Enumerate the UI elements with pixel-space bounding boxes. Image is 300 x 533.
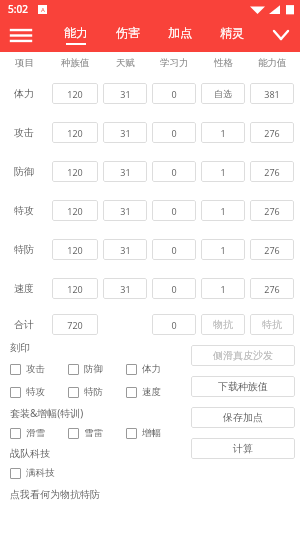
staticText: 攻击: [26, 363, 45, 375]
button[interactable]: 加点: [164, 23, 196, 47]
staticText: 720: [67, 319, 83, 331]
staticText: 特抗: [262, 318, 282, 331]
staticText: 战队科技: [10, 447, 50, 460]
staticText: 31: [120, 127, 131, 139]
staticText: 120: [67, 205, 83, 217]
staticText: 120: [67, 244, 83, 256]
staticText: 计算: [233, 442, 253, 455]
staticText: 天赋: [116, 57, 135, 69]
button[interactable]: 1: [201, 161, 245, 182]
button[interactable]: 0: [152, 83, 196, 104]
button[interactable]: 1: [201, 239, 245, 260]
button[interactable]: 特防: [68, 386, 126, 398]
button[interactable]: 自选: [201, 83, 245, 104]
staticText: 体力: [142, 363, 161, 375]
staticText: 加点: [168, 25, 192, 40]
button[interactable]: 物抗: [201, 314, 245, 335]
staticText: 速度: [14, 282, 34, 295]
button[interactable]: 0: [152, 200, 196, 221]
staticText: 项目: [15, 57, 34, 69]
button[interactable]: 能力: [60, 23, 92, 47]
staticText: 5:02: [8, 2, 28, 16]
staticText: 120: [67, 283, 83, 295]
staticText: 0: [171, 88, 177, 100]
staticText: 精灵: [220, 25, 244, 40]
button[interactable]: 276: [250, 161, 294, 182]
button[interactable]: 31: [103, 239, 147, 260]
button[interactable]: 720: [52, 314, 98, 335]
staticText: 合计: [14, 318, 34, 331]
staticText: 31: [120, 205, 131, 217]
button[interactable]: 0: [152, 161, 196, 182]
button[interactable]: 1: [201, 278, 245, 299]
staticText: 276: [264, 205, 280, 217]
staticText: 特攻: [26, 386, 45, 398]
staticText: 下载种族值: [218, 380, 268, 393]
button[interactable]: 0: [152, 314, 196, 335]
button[interactable]: 120: [52, 200, 98, 221]
button[interactable]: 侧滑真皮沙发: [191, 345, 295, 366]
button[interactable]: 计算: [191, 438, 295, 459]
button[interactable]: 31: [103, 122, 147, 143]
staticText: 31: [120, 283, 131, 295]
staticText: 种族值: [61, 57, 90, 69]
button[interactable]: 满科技: [10, 467, 80, 479]
button[interactable]: 0: [152, 278, 196, 299]
staticText: 0: [171, 166, 177, 178]
staticText: 0: [171, 283, 177, 295]
staticText: 120: [67, 88, 83, 100]
staticText: 0: [171, 244, 177, 256]
button[interactable]: 0: [152, 239, 196, 260]
button[interactable]: 31: [103, 278, 147, 299]
button[interactable]: 120: [52, 161, 98, 182]
button[interactable]: 120: [52, 83, 98, 104]
button[interactable]: 1: [201, 200, 245, 221]
button[interactable]: 0: [152, 122, 196, 143]
staticText: 381: [264, 88, 280, 100]
button[interactable]: 点我看何为物抗特防: [10, 488, 100, 501]
staticText: 276: [264, 127, 280, 139]
staticText: 特攻: [14, 204, 34, 217]
staticText: 1: [220, 283, 226, 295]
staticText: 120: [67, 166, 83, 178]
staticText: 特防: [84, 386, 103, 398]
button[interactable]: 120: [52, 122, 98, 143]
staticText: 性格: [214, 57, 233, 69]
button[interactable]: 滑雪: [10, 427, 68, 439]
staticText: 120: [67, 127, 83, 139]
button[interactable]: 31: [103, 161, 147, 182]
button[interactable]: 伤害: [112, 23, 144, 47]
button[interactable]: 雪雷: [68, 427, 126, 439]
staticText: 伤害: [116, 25, 140, 40]
button[interactable]: 31: [103, 83, 147, 104]
button[interactable]: 276: [250, 122, 294, 143]
button[interactable]: 速度: [126, 386, 184, 398]
button[interactable]: 276: [250, 200, 294, 221]
staticText: 31: [120, 88, 131, 100]
staticText: 特防: [14, 243, 34, 256]
button[interactable]: 1: [201, 122, 245, 143]
staticText: 自选: [214, 88, 232, 99]
button[interactable]: 276: [250, 278, 294, 299]
button[interactable]: 120: [52, 278, 98, 299]
button[interactable]: 特攻: [10, 386, 68, 398]
button[interactable]: Menu: [8, 22, 34, 48]
button[interactable]: 特抗: [250, 314, 294, 335]
button[interactable]: 120: [52, 239, 98, 260]
staticText: 31: [120, 244, 131, 256]
button[interactable]: 增幅: [126, 427, 184, 439]
button[interactable]: 保存加点: [191, 407, 295, 428]
button[interactable]: 攻击: [10, 363, 68, 375]
staticText: 1: [220, 244, 226, 256]
button[interactable]: 体力: [126, 363, 184, 375]
button[interactable]: 精灵: [216, 23, 248, 47]
button[interactable]: 276: [250, 239, 294, 260]
staticText: 攻击: [14, 126, 34, 139]
button[interactable]: 31: [103, 200, 147, 221]
staticText: 满科技: [26, 467, 55, 479]
button[interactable]: 下载种族值: [191, 376, 295, 397]
button[interactable]: 381: [250, 83, 294, 104]
button[interactable]: Expand: [268, 22, 294, 48]
staticText: 0: [171, 127, 177, 139]
button[interactable]: 防御: [68, 363, 126, 375]
